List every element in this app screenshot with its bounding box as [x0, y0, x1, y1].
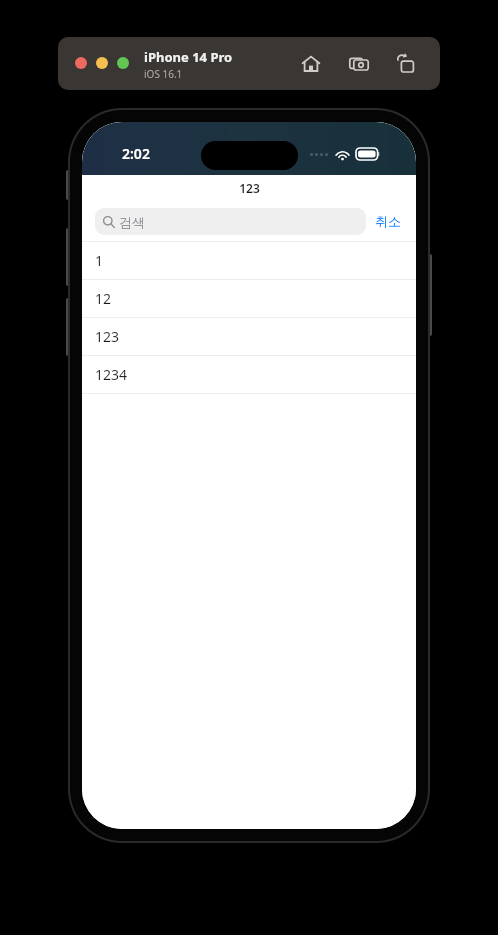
button[interactable]: Maximise — [117, 57, 129, 69]
button[interactable]: 1234 — [82, 356, 416, 393]
button[interactable]: 검색 — [95, 208, 366, 235]
button[interactable]: Screenshot — [346, 51, 372, 77]
staticText: 취소 — [375, 213, 401, 229]
staticText: 1 — [95, 251, 104, 270]
staticText: 123 — [239, 180, 260, 196]
button[interactable]: 1 — [82, 242, 416, 279]
staticText: 1234 — [95, 365, 128, 384]
staticText: 검색 — [119, 214, 145, 230]
staticText: 123 — [95, 327, 120, 346]
button[interactable]: Minimise — [96, 57, 108, 69]
button[interactable]: Close — [75, 57, 87, 69]
staticText: 12 — [95, 289, 112, 308]
staticText: 2:02 — [122, 144, 150, 163]
button[interactable]: Home — [298, 51, 324, 77]
staticText: iOS 16.1 — [144, 67, 183, 81]
button[interactable]: 123 — [82, 318, 416, 355]
button[interactable]: 12 — [82, 280, 416, 317]
button[interactable]: 취소 — [373, 209, 403, 233]
staticText: iPhone 14 Pro — [144, 48, 233, 66]
button[interactable]: Rotate — [394, 51, 420, 77]
